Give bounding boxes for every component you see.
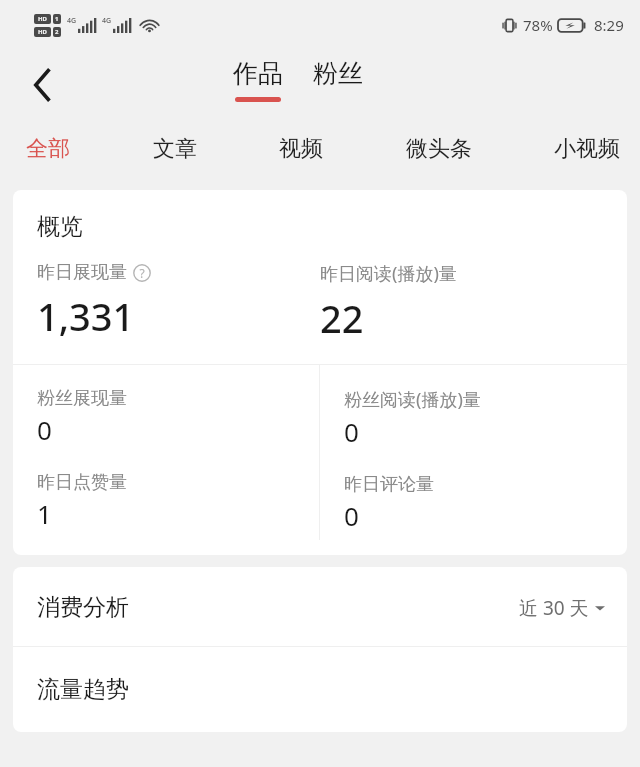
button[interactable]: 视频	[277, 129, 325, 169]
staticText: 0	[344, 498, 359, 533]
staticText: 78%	[523, 15, 553, 35]
staticText: 粉丝	[313, 58, 363, 89]
button[interactable]: Back	[16, 59, 68, 111]
button[interactable]: Help	[133, 264, 151, 282]
staticText: 昨日评论量	[344, 473, 434, 496]
staticText: 昨日展现量	[37, 261, 127, 284]
staticText: 粉丝展现量	[37, 387, 127, 410]
staticText: 概览	[37, 212, 83, 241]
button[interactable]: 近 30 天	[519, 595, 605, 621]
button[interactable]: 文章	[151, 129, 199, 169]
staticText: 近 30 天	[519, 595, 589, 621]
button[interactable]: 全部	[24, 129, 72, 169]
staticText: 小视频	[554, 135, 620, 163]
staticText: 4G	[67, 16, 77, 26]
staticText: 消费分析	[37, 593, 129, 622]
staticText: 文章	[153, 135, 197, 163]
staticText: ?	[139, 265, 145, 281]
staticText: 粉丝阅读(播放)量	[344, 387, 481, 412]
staticText: 视频	[279, 135, 323, 163]
staticText: 1,331	[37, 290, 135, 342]
staticText: 2	[55, 28, 59, 36]
staticText: 微头条	[406, 135, 472, 163]
button[interactable]: 作品	[233, 58, 283, 102]
staticText: 1	[37, 496, 52, 531]
staticText: 昨日点赞量	[37, 471, 127, 494]
staticText: 流量趋势	[37, 675, 129, 704]
staticText: 4G	[102, 16, 112, 26]
staticText: 昨日阅读(播放)量	[320, 261, 457, 286]
staticText: 0	[344, 414, 359, 449]
staticText: HD	[38, 15, 47, 23]
staticText: 8:29	[594, 15, 624, 35]
button[interactable]: 微头条	[404, 129, 474, 169]
staticText: 22	[320, 292, 364, 344]
staticText: 作品	[233, 58, 283, 89]
staticText: HD	[38, 28, 47, 36]
button[interactable]: 小视频	[552, 129, 622, 169]
staticText: 0	[37, 412, 52, 447]
staticText: 1	[55, 15, 59, 23]
button[interactable]: 粉丝	[313, 58, 363, 89]
staticText: 全部	[26, 135, 70, 163]
